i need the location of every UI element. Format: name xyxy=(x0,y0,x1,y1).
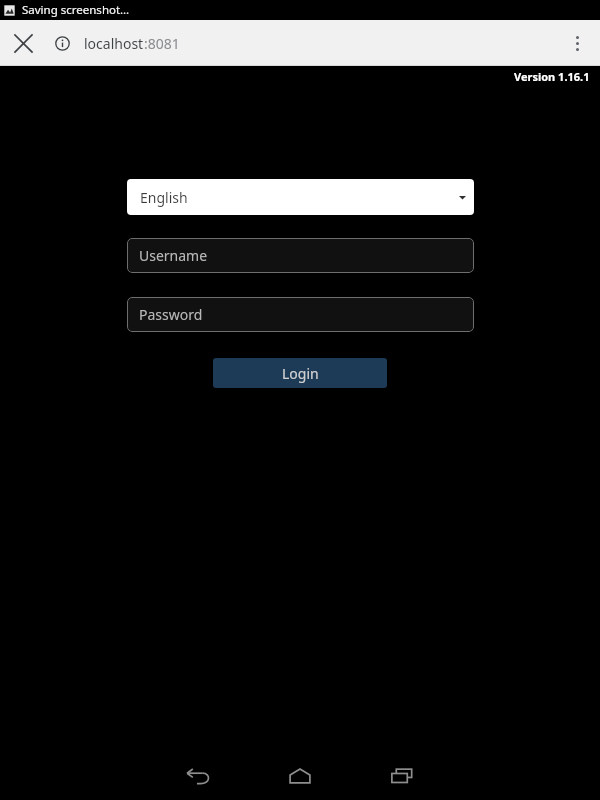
button[interactable]: Password xyxy=(127,297,474,332)
staticText: Username xyxy=(139,246,208,265)
staticText: Login xyxy=(282,364,319,383)
button[interactable]: Back xyxy=(174,752,222,800)
button[interactable]: Site information xyxy=(46,27,78,59)
staticText: Version 1.16.1 xyxy=(514,69,590,84)
staticText: Password xyxy=(139,305,203,324)
button[interactable]: Close xyxy=(0,20,46,66)
button[interactable]: Login xyxy=(213,358,387,388)
button[interactable]: Recent apps xyxy=(378,752,426,800)
button[interactable]: More options xyxy=(554,20,600,66)
staticText: localhost xyxy=(84,34,144,53)
button[interactable]: Username xyxy=(127,238,474,273)
staticText: English xyxy=(140,188,188,207)
staticText: Saving screenshot… xyxy=(22,2,130,18)
button[interactable]: English xyxy=(127,179,474,215)
staticText: :8081 xyxy=(144,34,180,53)
button[interactable]: Home xyxy=(276,752,324,800)
button[interactable]: localhost xyxy=(84,34,554,53)
